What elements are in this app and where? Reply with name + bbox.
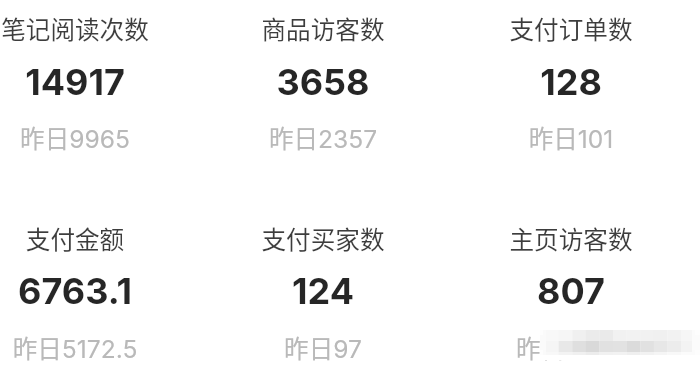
button[interactable]: 商品访客数 — [199, 0, 447, 188]
staticText: 商品访客数 — [199, 10, 447, 46]
staticText: 3658 — [199, 60, 447, 104]
button[interactable]: 支付买家数 — [199, 188, 447, 376]
staticText: 昨日97 — [199, 329, 447, 365]
staticText: 807 — [447, 269, 695, 313]
staticText: 昨日2357 — [199, 119, 447, 155]
staticText: 主页访客数 — [447, 220, 695, 256]
staticText: 6763.1 — [0, 269, 199, 313]
button[interactable]: 笔记阅读次数 — [0, 0, 199, 188]
staticText: 笔记阅读次数 — [0, 10, 199, 46]
staticText: 昨日9965 — [0, 119, 199, 155]
button[interactable]: 支付金额 — [0, 188, 199, 376]
staticText: 128 — [447, 60, 695, 104]
other: Hidden value — [540, 326, 700, 360]
button[interactable]: 主页访客数 — [447, 188, 695, 376]
staticText: 支付金额 — [0, 220, 199, 256]
staticText: 支付买家数 — [199, 220, 447, 256]
button[interactable]: 支付订单数 — [447, 0, 695, 188]
staticText: 昨日2333 — [447, 329, 695, 365]
staticText: 124 — [199, 269, 447, 313]
staticText: 昨日101 — [447, 119, 695, 155]
staticText: 14917 — [0, 60, 199, 104]
staticText: 支付订单数 — [447, 10, 695, 46]
staticText: 昨日5172.5 — [0, 329, 199, 365]
